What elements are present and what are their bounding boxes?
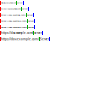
staticText: Server: [27, 14, 33, 16]
staticText: https://dav.example.com/: [1, 8, 21, 10]
staticText: Server: [28, 25, 34, 29]
staticText: Server: [28, 19, 34, 22]
staticText: https://dav.example.com/: [1, 2, 16, 4]
staticText: https://dav.example.com/: [1, 31, 33, 35]
staticText: https://dav.example.com/: [1, 19, 27, 22]
staticText: Server: [34, 31, 42, 35]
staticText: https://dav.example.com/: [1, 25, 27, 29]
staticText: https://dav.example.com/: [1, 14, 26, 16]
staticText: Server: [22, 8, 28, 10]
staticText: Server: [40, 37, 49, 41]
staticText: Server: [17, 2, 23, 4]
staticText: https://dav.example.com/: [1, 37, 39, 41]
